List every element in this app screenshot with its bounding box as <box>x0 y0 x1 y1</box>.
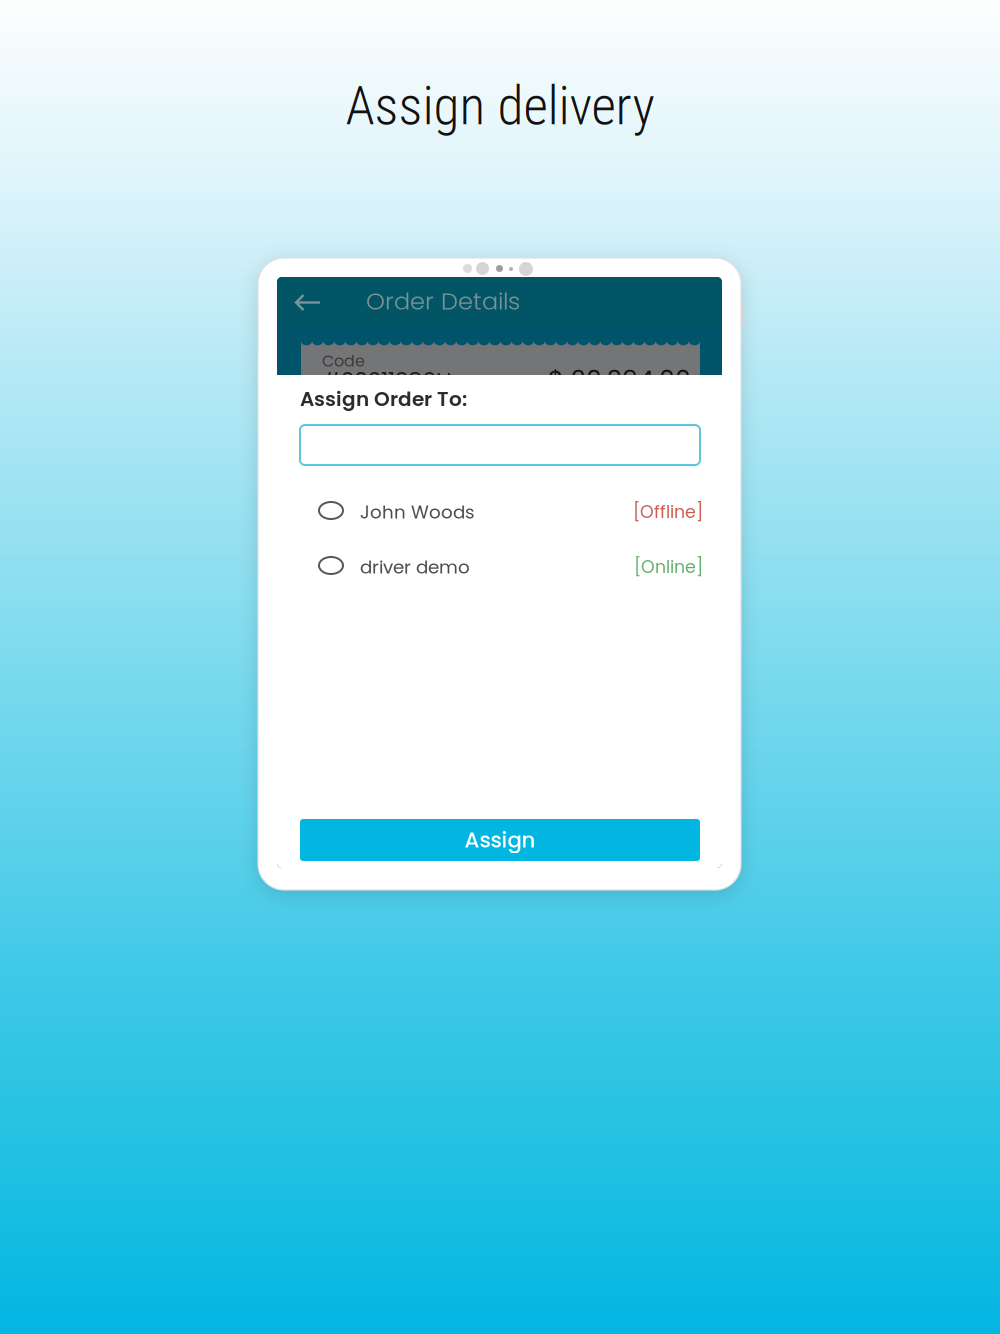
staticText: $ 20,394.00 <box>548 362 691 398</box>
staticText: Code <box>322 350 365 372</box>
staticText: Order Details <box>366 284 520 318</box>
button[interactable]: Search drivers <box>300 425 700 465</box>
button[interactable]: John Woods <box>300 489 700 531</box>
staticText: [Offline] <box>633 500 703 524</box>
button[interactable]: Assign <box>300 819 700 861</box>
button[interactable]: Back <box>296 295 320 310</box>
button[interactable]: driver demo <box>300 544 700 586</box>
staticText: Assign Order To: <box>300 385 467 413</box>
staticText: John Woods <box>360 499 475 525</box>
staticText: Assign delivery <box>345 75 654 137</box>
staticText: [Online] <box>634 555 703 579</box>
staticText: driver demo <box>360 554 470 580</box>
staticText: Assign <box>464 825 535 855</box>
staticText: #20211386H <box>322 365 452 397</box>
